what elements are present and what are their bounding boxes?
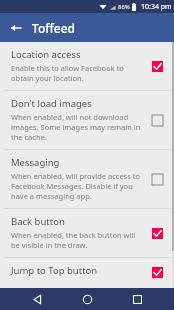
button[interactable]: Don't load images [0, 91, 174, 149]
staticText: Jump to Top button [11, 264, 98, 277]
button[interactable]: Recent apps [124, 288, 150, 310]
button[interactable]: Back [24, 288, 50, 310]
staticText: 86% [118, 3, 130, 11]
button[interactable]: Jump to Top button [0, 258, 174, 288]
button[interactable]: Checked, Back button [146, 222, 168, 244]
staticText: When enabled, will provide access to Fac… [11, 171, 142, 201]
button[interactable]: Location access [0, 42, 174, 90]
staticText: Messaging [11, 156, 60, 169]
button[interactable]: Unchecked, Don't load images [146, 109, 168, 131]
staticText: When enabled, will not download images. … [11, 112, 142, 142]
staticText: Enable this to allow Facebook to obtain … [11, 63, 142, 83]
button[interactable]: Unchecked, Messaging [146, 168, 168, 190]
staticText: When enabled, the back button will be vi… [11, 230, 142, 250]
button[interactable]: Checked, Jump to Top button [146, 264, 168, 281]
button[interactable]: Back [5, 17, 27, 39]
staticText: Don't load images [11, 97, 92, 110]
button[interactable]: Messaging [0, 150, 174, 208]
staticText: Location access [11, 48, 81, 61]
button[interactable]: Home [74, 288, 100, 310]
staticText: Back button [11, 215, 65, 228]
button[interactable]: Back button [0, 209, 174, 257]
staticText: Toffeed [32, 20, 76, 36]
button[interactable]: Checked, Location access [146, 55, 168, 77]
staticText: 10:34 pm [141, 2, 172, 12]
